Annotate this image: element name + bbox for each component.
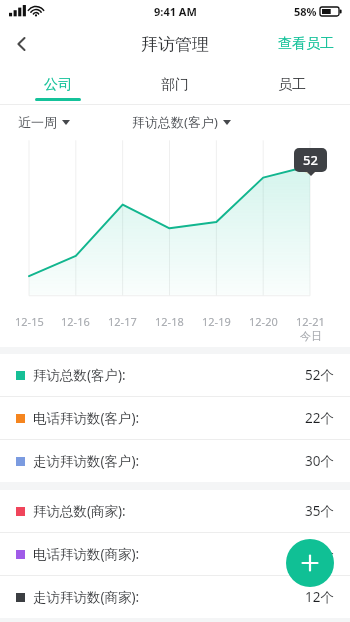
button[interactable]: 电话拜访数(客户): (0, 397, 350, 439)
staticText: 22个 (305, 409, 334, 427)
staticText: 9:41 AM (154, 4, 197, 19)
staticText: 部门 (161, 76, 189, 94)
staticText: 52 (303, 151, 318, 169)
staticText: 12-18 (155, 314, 184, 329)
staticText: 12-16 (61, 314, 90, 329)
button[interactable]: 拜访总数(客户): (0, 354, 350, 396)
staticText: 今日 (300, 329, 322, 343)
staticText: 12个 (305, 588, 334, 606)
button[interactable]: 拜访总数(客户) (132, 109, 231, 135)
staticText: 52个 (305, 366, 334, 384)
button[interactable]: 公司 (0, 66, 116, 104)
staticText: 58% (294, 4, 317, 19)
button[interactable]: 走访拜访数(客户): (0, 440, 350, 482)
staticText: 12个 (305, 545, 334, 563)
staticText: 12-19 (202, 314, 231, 329)
button[interactable]: 查看员工 (262, 22, 350, 66)
staticText: 走访拜访数(客户): (33, 452, 140, 470)
button[interactable]: 员工 (233, 66, 350, 104)
button[interactable]: Add (286, 539, 334, 587)
button[interactable]: 近一周 (18, 110, 70, 134)
staticText: 35个 (305, 502, 334, 520)
staticText: 电话拜访数(客户): (33, 409, 140, 427)
button[interactable]: 走访拜访数(商家): (0, 576, 350, 618)
staticText: 12-15 (15, 314, 44, 329)
staticText: 员工 (278, 76, 306, 94)
staticText: 拜访管理 (141, 34, 209, 55)
staticText: 公司 (44, 76, 72, 94)
staticText: 拜访总数(客户): (33, 366, 126, 384)
staticText: 近一周 (18, 114, 57, 130)
staticText: 12-17 (108, 314, 137, 329)
button[interactable]: 部门 (116, 66, 233, 104)
staticText: 12-21 (296, 314, 325, 329)
staticText: 电话拜访数(商家): (33, 545, 140, 563)
staticText: 查看员工 (278, 35, 334, 53)
staticText: 走访拜访数(商家): (33, 588, 140, 606)
button[interactable]: Back (0, 22, 44, 66)
staticText: 12-20 (249, 314, 278, 329)
staticText: 拜访总数(客户) (132, 113, 218, 131)
button[interactable]: 拜访总数(商家): (0, 490, 350, 532)
staticText: 拜访总数(商家): (33, 502, 126, 520)
staticText: 30个 (305, 452, 334, 470)
button[interactable]: 电话拜访数(商家): (0, 533, 350, 575)
